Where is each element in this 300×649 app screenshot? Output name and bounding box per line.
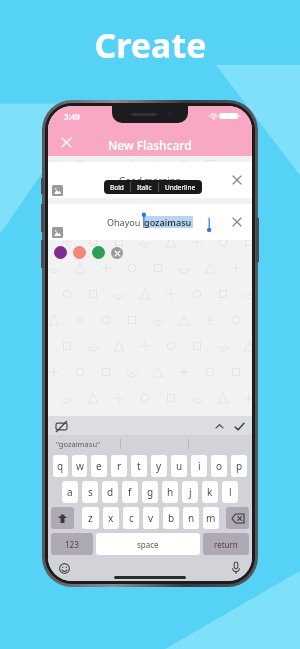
- button[interactable]: Shift: [51, 507, 74, 529]
- button[interactable]: Clear color: [111, 247, 123, 259]
- button[interactable]: e: [91, 455, 107, 477]
- staticText: x: [108, 511, 114, 525]
- staticText: Bold: [110, 183, 124, 192]
- staticText: 3:49: [64, 111, 80, 122]
- button[interactable]: y: [151, 455, 167, 477]
- button[interactable]: n: [183, 507, 199, 529]
- staticText: gozaimasu: [144, 216, 192, 228]
- button[interactable]: 123: [51, 533, 93, 555]
- button[interactable]: Add image: [52, 227, 63, 238]
- button[interactable]: Emoji: [56, 560, 72, 576]
- staticText: r: [117, 459, 122, 473]
- button[interactable]: k: [202, 481, 218, 503]
- button[interactable]: m: [203, 507, 219, 529]
- staticText: Ohayou: [107, 216, 143, 228]
- staticText: w: [76, 459, 84, 473]
- staticText: p: [236, 459, 243, 473]
- button[interactable]: l: [222, 481, 238, 503]
- staticText: i: [198, 459, 201, 473]
- button[interactable]: z: [82, 507, 99, 529]
- button[interactable]: Voice input: [228, 560, 244, 576]
- staticText: g: [147, 485, 154, 499]
- button[interactable]: o: [211, 455, 227, 477]
- button[interactable]: v: [143, 507, 159, 529]
- button[interactable]: c: [123, 507, 139, 529]
- button[interactable]: Add image: [52, 185, 63, 196]
- button[interactable]: space: [96, 533, 200, 555]
- staticText: e: [96, 459, 102, 473]
- button[interactable]: Backspace: [226, 507, 249, 529]
- staticText: b: [168, 511, 175, 525]
- staticText: s: [88, 485, 93, 499]
- button[interactable]: b: [163, 507, 179, 529]
- button[interactable]: Bold: [104, 183, 130, 192]
- staticText: Good morning: [119, 174, 181, 186]
- button[interactable]: f: [122, 481, 138, 503]
- button[interactable]: q: [53, 455, 68, 477]
- button[interactable]: Delete row: [228, 171, 246, 189]
- staticText: c: [129, 511, 134, 525]
- staticText: l: [229, 485, 232, 499]
- staticText: z: [88, 511, 93, 525]
- button[interactable]: r: [111, 455, 127, 477]
- button[interactable]: Add image: [48, 204, 252, 240]
- staticText: h: [167, 485, 174, 499]
- staticText: k: [207, 485, 213, 499]
- button[interactable]: j: [182, 481, 198, 503]
- staticText: m: [206, 511, 216, 525]
- button[interactable]: Add image: [48, 162, 252, 198]
- button[interactable]: t: [131, 455, 147, 477]
- button[interactable]: Underline: [159, 183, 202, 192]
- button[interactable]: s: [82, 481, 98, 503]
- button[interactable]: Color: [92, 246, 105, 259]
- button[interactable]: i: [191, 455, 207, 477]
- staticText: 123: [65, 539, 79, 550]
- staticText: t: [137, 459, 141, 473]
- button[interactable]: Expand: [212, 419, 226, 433]
- staticText: v: [148, 511, 154, 525]
- staticText: j: [189, 485, 192, 499]
- staticText: New Flashcard: [108, 137, 192, 153]
- button[interactable]: Done: [232, 419, 246, 433]
- staticText: a: [67, 485, 73, 499]
- button[interactable]: Delete row: [228, 213, 246, 231]
- staticText: y: [156, 459, 162, 473]
- staticText: Italic: [137, 183, 152, 192]
- button[interactable]: Hide keyboard: [54, 419, 68, 433]
- staticText: q: [57, 459, 64, 473]
- button[interactable]: Italic: [131, 183, 158, 192]
- staticText: space: [137, 539, 159, 550]
- staticText: n: [188, 511, 195, 525]
- staticText: d: [107, 485, 114, 499]
- button[interactable]: u: [171, 455, 187, 477]
- button[interactable]: h: [162, 481, 178, 503]
- staticText: Underline: [165, 183, 196, 192]
- button[interactable]: g: [142, 481, 158, 503]
- staticText: Create: [94, 22, 207, 68]
- staticText: return: [214, 539, 238, 550]
- button[interactable]: a: [62, 481, 78, 503]
- button[interactable]: p: [231, 455, 247, 477]
- button[interactable]: Color: [54, 246, 67, 259]
- button[interactable]: w: [72, 455, 87, 477]
- button[interactable]: return: [203, 533, 249, 555]
- staticText: f: [128, 485, 132, 499]
- button[interactable]: Close: [56, 132, 76, 152]
- staticText: "gozaimasu": [56, 439, 101, 449]
- button[interactable]: Color: [73, 246, 86, 259]
- button[interactable]: d: [102, 481, 118, 503]
- staticText: u: [176, 459, 183, 473]
- button[interactable]: x: [103, 507, 119, 529]
- staticText: o: [216, 459, 223, 473]
